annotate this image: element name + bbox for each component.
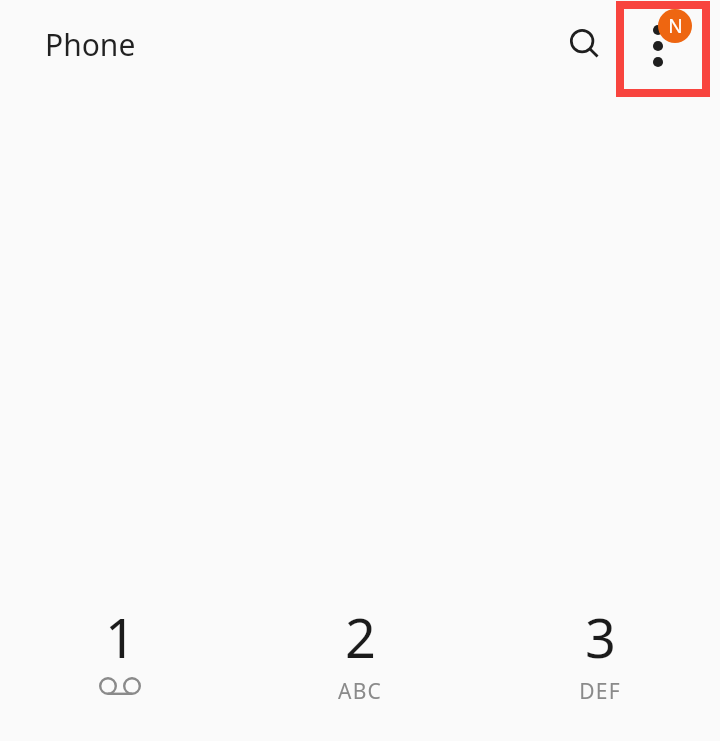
button[interactable]: Search (553, 12, 617, 76)
staticText: N (668, 13, 683, 39)
staticText: 1 (105, 600, 136, 674)
button[interactable]: 3 (480, 600, 720, 720)
button[interactable]: More options (616, 1, 710, 97)
button[interactable]: 2 (240, 600, 480, 720)
staticText: Phone (45, 24, 136, 65)
staticText: DEF (579, 677, 621, 706)
staticText: 2 (345, 600, 376, 674)
staticText: 3 (585, 600, 616, 674)
button[interactable]: 1 (0, 600, 240, 720)
staticText: ABC (338, 677, 382, 706)
